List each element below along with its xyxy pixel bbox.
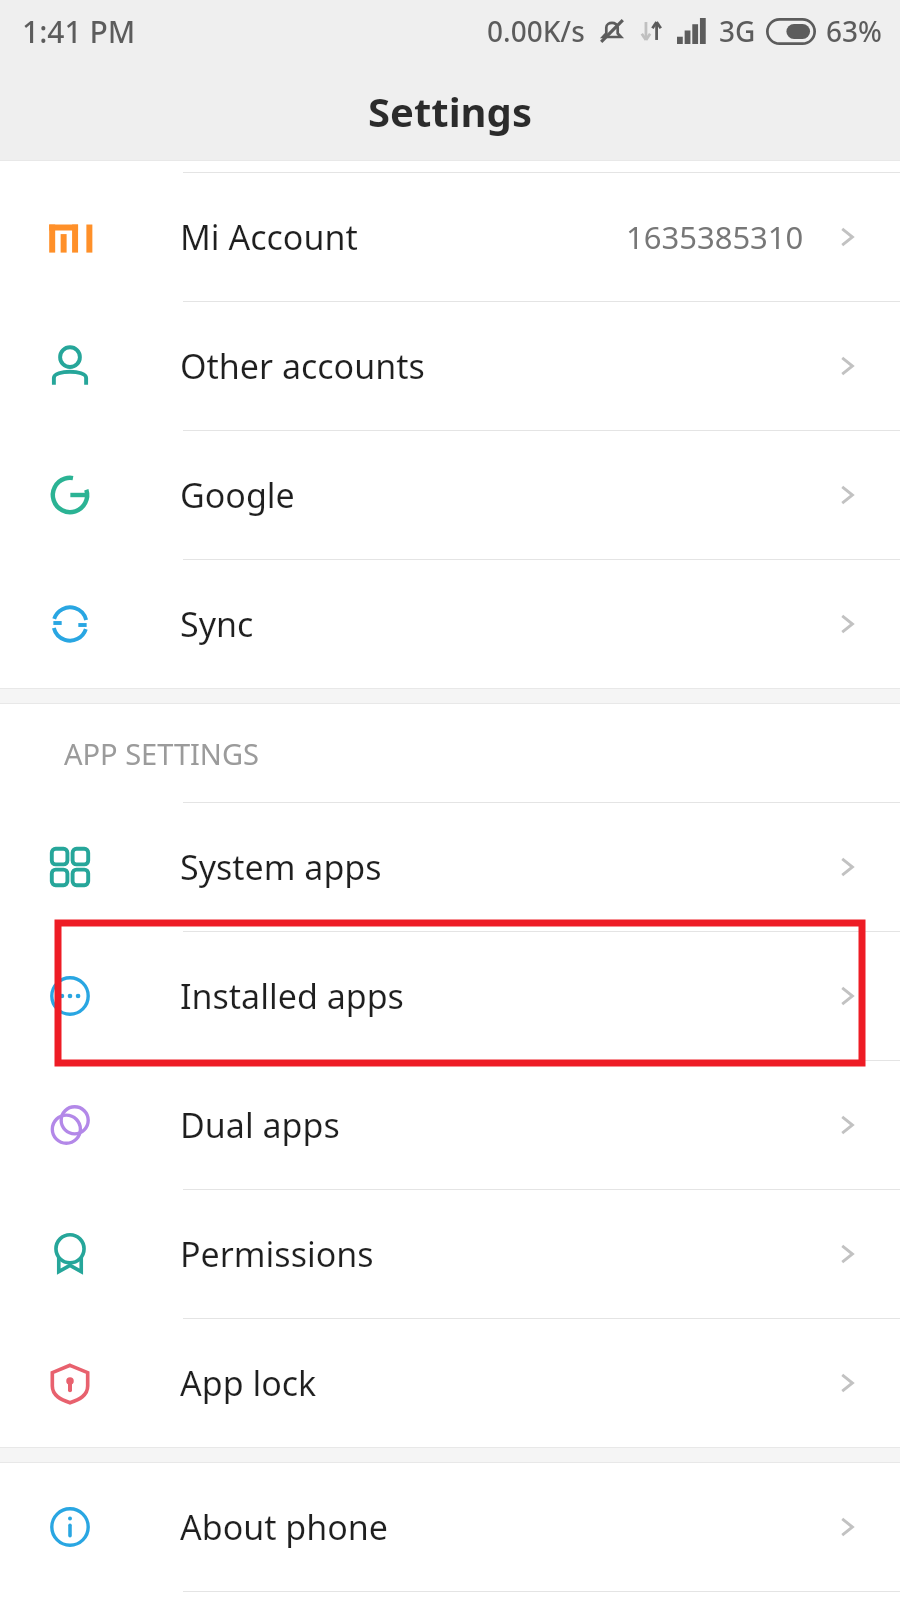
staticText: Permissions [180,1231,374,1277]
button[interactable]: Installed apps [0,932,900,1061]
staticText: Other accounts [180,343,425,389]
staticText: Google [180,472,295,518]
button[interactable]: Mi Account [0,173,900,302]
staticText: APP SETTINGS [64,734,259,773]
staticText: Installed apps [180,973,404,1019]
button[interactable]: About phone [0,1463,900,1591]
staticText: Sync [180,601,254,647]
staticText: About phone [180,1504,389,1550]
staticText: Mi Account [180,214,358,260]
staticText: 3G [719,12,756,50]
staticText: Dual apps [180,1102,340,1148]
staticText: 1635385310 [626,216,804,258]
staticText: 0.00K/s [487,12,585,50]
staticText: App lock [180,1360,317,1406]
button[interactable]: Dual apps [0,1061,900,1190]
button[interactable]: Permissions [0,1190,900,1319]
button[interactable]: Other accounts [0,302,900,431]
button[interactable]: System apps [0,803,900,932]
staticText: 63% [826,12,882,50]
other: Highlight [0,0,900,1600]
button[interactable]: App lock [0,1319,900,1447]
button[interactable]: Sync [0,560,900,688]
staticText: 1:41 PM [22,11,136,52]
staticText: System apps [180,844,382,890]
staticText: Settings [368,84,532,138]
button[interactable]: Google [0,431,900,560]
